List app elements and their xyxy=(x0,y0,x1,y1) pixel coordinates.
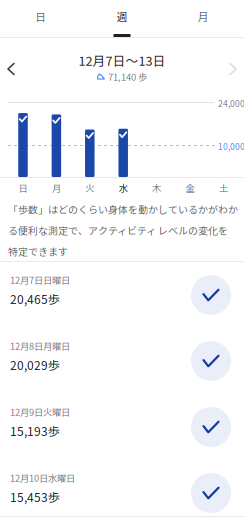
staticText: 24,000 xyxy=(218,97,244,109)
staticText: 金 xyxy=(185,181,194,194)
staticText: 土 xyxy=(219,181,228,194)
staticText: 12月10日水曜日 xyxy=(10,471,75,484)
staticText: 木 xyxy=(152,181,161,194)
staticText: 特定できます xyxy=(8,244,68,258)
staticText: 15,453歩 xyxy=(10,488,60,505)
staticText: 12月8日月曜日 xyxy=(10,339,70,352)
button[interactable]: 前の週 xyxy=(0,52,25,86)
button[interactable]: 12月10日水曜日 xyxy=(0,460,244,523)
staticText: 「歩数」はどのくらい身体を動かしているかがわか xyxy=(8,202,238,216)
staticText: 20,029歩 xyxy=(10,356,60,373)
staticText: 月 xyxy=(198,9,209,24)
staticText: 12月7日日曜日 xyxy=(10,273,70,286)
staticText: 日 xyxy=(35,9,46,24)
staticText: 水 xyxy=(119,181,128,194)
staticText: 71,140 歩 xyxy=(108,70,147,83)
staticText: 週 xyxy=(116,9,127,24)
staticText: 12月9日火曜日 xyxy=(10,405,70,418)
button[interactable]: 12月7日日曜日 xyxy=(0,262,244,328)
button[interactable]: 12月9日火曜日 xyxy=(0,394,244,460)
staticText: 火 xyxy=(85,181,94,194)
staticText: 月 xyxy=(52,181,61,194)
button[interactable]: 12月8日月曜日 xyxy=(0,328,244,394)
button[interactable]: 月 xyxy=(163,0,244,37)
staticText: 12月7日〜13日 xyxy=(78,51,165,69)
staticText: 20,465歩 xyxy=(10,290,60,307)
button[interactable]: 次の週 xyxy=(219,52,244,86)
staticText: 15,193歩 xyxy=(10,422,60,439)
staticText: 10,000 xyxy=(218,140,244,152)
staticText: る便利な測定で、アクティビティ レベルの変化を xyxy=(8,223,228,237)
button[interactable]: 日 xyxy=(0,0,81,37)
button[interactable]: 週 xyxy=(81,0,163,37)
staticText: 日 xyxy=(18,181,27,194)
